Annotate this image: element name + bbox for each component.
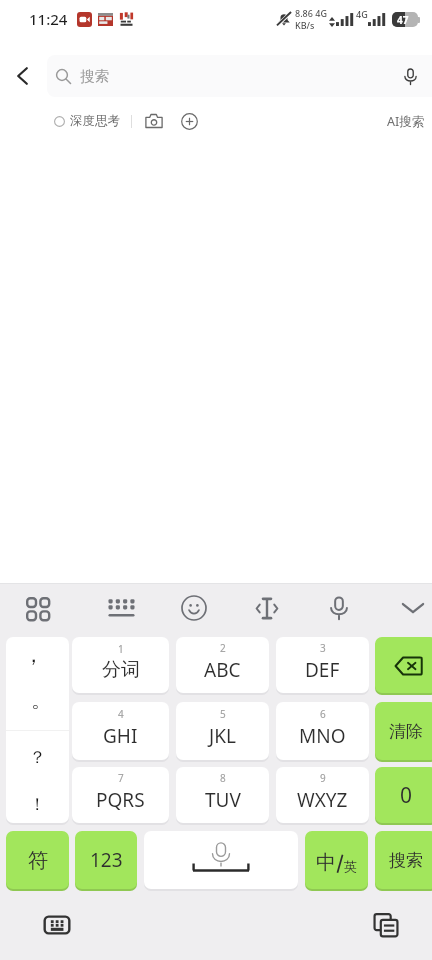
button[interactable]: Switch keyboard	[39, 907, 75, 943]
staticText: DEF	[305, 657, 340, 683]
staticText: 5	[220, 707, 226, 721]
button[interactable]: 7	[72, 767, 169, 823]
button[interactable]: Move cursor	[243, 584, 291, 632]
button[interactable]: 9	[276, 767, 369, 823]
staticText: 8	[220, 771, 226, 785]
button[interactable]: Keyboard layout	[97, 584, 145, 632]
button[interactable]: Hide keyboard	[389, 584, 432, 632]
staticText: 符	[28, 848, 48, 873]
button[interactable]: 搜索	[375, 831, 432, 889]
staticText: 英	[344, 858, 357, 874]
button[interactable]: 4	[72, 702, 169, 760]
staticText: AI搜索	[387, 113, 425, 130]
staticText: 搜索	[80, 67, 109, 85]
staticText: 8.86 4G	[295, 7, 327, 19]
staticText: 47	[397, 13, 409, 27]
button[interactable]: Add	[178, 110, 200, 132]
staticText: 4G	[356, 8, 368, 20]
staticText: GHI	[103, 723, 138, 749]
button[interactable]: Delete	[375, 637, 432, 693]
button[interactable]: 3	[276, 637, 369, 693]
button[interactable]: More tools	[13, 584, 61, 632]
staticText: TUV	[205, 787, 241, 813]
button[interactable]: ？	[6, 731, 69, 777]
staticText: ！	[29, 794, 46, 815]
button[interactable]: Space	[144, 831, 298, 889]
button[interactable]: 8	[176, 767, 269, 823]
staticText: 4	[118, 707, 124, 721]
staticText: 11:24	[29, 9, 68, 29]
staticText: 1	[118, 642, 124, 656]
button[interactable]: 。	[6, 684, 69, 730]
staticText: 9	[320, 771, 326, 785]
staticText: KB/s	[295, 19, 315, 31]
button[interactable]: 0	[375, 767, 432, 823]
button[interactable]: Voice input	[315, 584, 363, 632]
button[interactable]: AI搜索	[387, 113, 425, 130]
button[interactable]: 符	[6, 831, 69, 889]
button[interactable]: Back	[0, 55, 47, 97]
staticText: 深度思考	[70, 113, 120, 129]
button[interactable]: 中	[305, 831, 368, 889]
button[interactable]: 深度思考	[54, 113, 120, 129]
staticText: WXYZ	[297, 787, 348, 813]
button[interactable]: 清除	[375, 702, 432, 760]
button[interactable]: Voice input	[389, 55, 432, 97]
button[interactable]: Camera	[143, 110, 165, 132]
staticText: MNO	[299, 723, 346, 749]
staticText: JKL	[209, 723, 236, 749]
button[interactable]: 2	[176, 637, 269, 693]
staticText: ？	[29, 747, 46, 768]
button[interactable]: Emoji	[170, 584, 218, 632]
button[interactable]: 5	[176, 702, 269, 760]
staticText: 清除	[389, 721, 423, 742]
staticText: 2	[220, 641, 226, 655]
button[interactable]: 6	[276, 702, 369, 760]
staticText: 搜索	[389, 850, 423, 871]
staticText: 0	[400, 781, 413, 810]
staticText: 123	[90, 847, 123, 873]
staticText: ABC	[204, 657, 241, 683]
button[interactable]: 1	[72, 637, 169, 693]
staticText: 中	[316, 850, 336, 875]
staticText: 3	[320, 641, 326, 655]
button[interactable]: 123	[75, 831, 137, 889]
staticText: 7	[118, 771, 124, 785]
button[interactable]: ，	[6, 637, 69, 684]
button[interactable]: Clipboard	[368, 907, 404, 943]
staticText: ，	[23, 642, 44, 668]
staticText: 6	[320, 707, 326, 721]
button[interactable]: ！	[6, 777, 69, 823]
staticText: PQRS	[96, 787, 145, 813]
staticText: 分词	[102, 658, 140, 682]
button[interactable]: 搜索	[47, 55, 432, 97]
staticText: 。	[31, 687, 52, 713]
